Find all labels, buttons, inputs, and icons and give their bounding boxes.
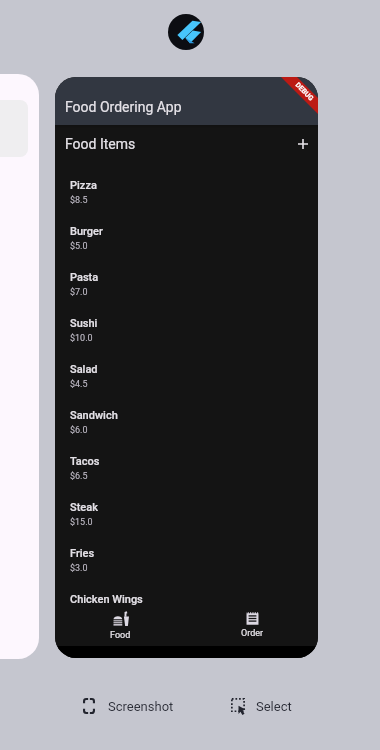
button[interactable]: Select bbox=[231, 693, 292, 719]
button[interactable]: Fries bbox=[55, 542, 318, 588]
staticText: Fries bbox=[70, 547, 95, 560]
button[interactable]: Burger bbox=[55, 220, 318, 266]
staticText: Tacos bbox=[70, 455, 100, 468]
button[interactable]: Sandwich bbox=[55, 404, 318, 450]
staticText: $7.0 bbox=[70, 287, 88, 298]
staticText: $6.0 bbox=[70, 425, 88, 436]
button[interactable]: Sushi bbox=[55, 312, 318, 358]
staticText: Sushi bbox=[70, 317, 98, 330]
staticText: Order bbox=[241, 628, 264, 639]
staticText: $4.5 bbox=[70, 379, 88, 390]
button[interactable]: Pizza bbox=[55, 174, 318, 220]
button[interactable]: Add food item bbox=[290, 131, 316, 157]
button[interactable]: Chicken Wings bbox=[55, 588, 318, 634]
button[interactable]: Steak bbox=[55, 496, 318, 542]
button[interactable]: Screenshot bbox=[83, 693, 174, 719]
staticText: Food bbox=[110, 630, 131, 641]
staticText: Salad bbox=[70, 363, 98, 376]
button[interactable]: Pasta bbox=[55, 266, 318, 312]
staticText: Food Ordering App bbox=[65, 99, 182, 115]
staticText: Screenshot bbox=[108, 699, 174, 714]
staticText: Burger bbox=[70, 225, 103, 238]
staticText: $15.0 bbox=[70, 517, 93, 528]
staticText: $5.0 bbox=[70, 241, 88, 252]
staticText: DEBUG bbox=[293, 81, 315, 103]
staticText: $6.5 bbox=[70, 471, 88, 482]
staticText: $8.5 bbox=[70, 195, 88, 206]
staticText: Chicken Wings bbox=[70, 593, 143, 606]
staticText: Pizza bbox=[70, 179, 97, 192]
button[interactable]: Order tab bbox=[186, 609, 318, 642]
staticText: $10.0 bbox=[70, 333, 93, 344]
staticText: Food Items bbox=[65, 136, 136, 152]
staticText: Pasta bbox=[70, 271, 99, 284]
staticText: Sandwich bbox=[70, 409, 118, 422]
staticText: Select bbox=[256, 699, 292, 714]
button[interactable]: Salad bbox=[55, 358, 318, 404]
button[interactable]: Tacos bbox=[55, 450, 318, 496]
staticText: $3.0 bbox=[70, 563, 88, 574]
button[interactable]: Food tab bbox=[55, 608, 186, 644]
staticText: Steak bbox=[70, 501, 98, 514]
